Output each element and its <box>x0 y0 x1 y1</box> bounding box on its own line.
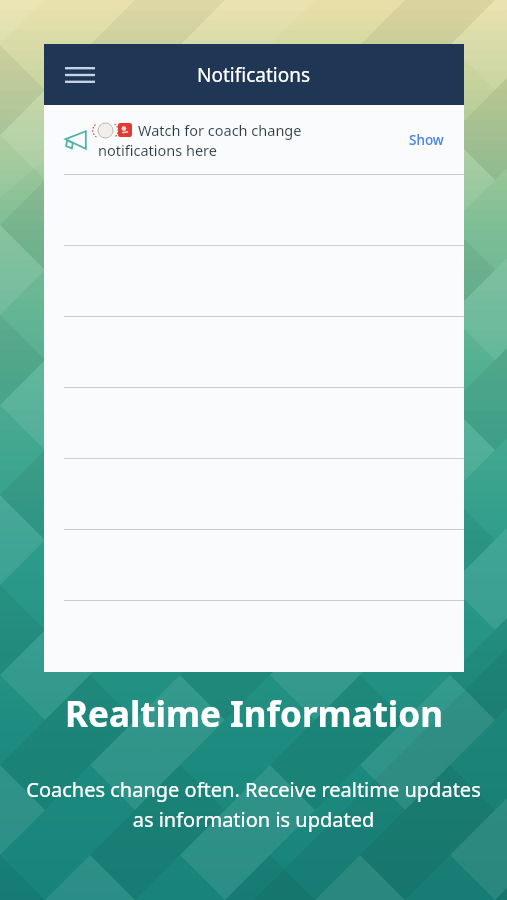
staticText: Coaches change often. Receive realtime u… <box>14 776 493 833</box>
button[interactable] <box>44 174 464 245</box>
button[interactable] <box>44 600 464 671</box>
button[interactable] <box>44 387 464 458</box>
staticText: Notifications <box>197 62 311 88</box>
button[interactable] <box>44 458 464 529</box>
staticText: Watch for coach change <box>138 120 302 140</box>
button[interactable] <box>44 245 464 316</box>
button[interactable] <box>44 529 464 600</box>
staticText: Realtime Information <box>65 690 443 738</box>
button[interactable] <box>44 316 464 387</box>
staticText: Show <box>409 131 444 149</box>
staticText: notifications here <box>98 140 217 160</box>
button[interactable]: Show <box>403 123 450 157</box>
button[interactable]: Open navigation menu <box>58 53 102 97</box>
button[interactable]: Watch for coach change <box>44 105 464 174</box>
